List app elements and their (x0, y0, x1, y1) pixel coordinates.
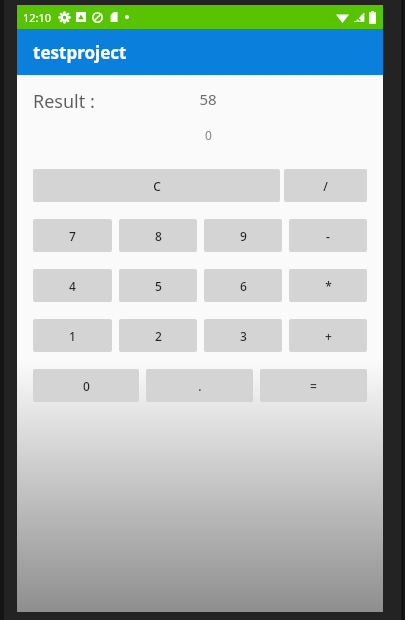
staticText: 0 (205, 127, 212, 143)
staticText: 12:10 (23, 10, 52, 25)
staticText: 0 (83, 378, 90, 394)
staticText: / (323, 178, 328, 194)
staticText: 6 (240, 278, 247, 294)
staticText: 9 (240, 228, 247, 244)
button[interactable]: - (289, 219, 367, 252)
staticText: 4 (69, 278, 76, 294)
staticText: * (325, 278, 332, 294)
button[interactable]: 2 (119, 319, 197, 352)
button[interactable]: 4 (33, 269, 112, 302)
button[interactable]: . (146, 369, 253, 402)
button[interactable]: 0 (33, 369, 139, 402)
staticText: + (325, 328, 332, 344)
button[interactable]: = (260, 369, 367, 402)
staticText: 5 (155, 278, 162, 294)
button[interactable]: 3 (204, 319, 282, 352)
staticText: testproject (33, 41, 127, 64)
button[interactable]: 5 (119, 269, 197, 302)
staticText: . (198, 378, 202, 394)
button[interactable]: + (289, 319, 367, 352)
staticText: - (326, 228, 330, 244)
staticText: Result : (33, 89, 95, 114)
button[interactable]: 9 (204, 219, 282, 252)
staticText: C (153, 178, 161, 194)
staticText: 1 (69, 328, 76, 344)
button[interactable]: 1 (33, 319, 112, 352)
staticText: 3 (240, 328, 247, 344)
button[interactable]: / (284, 169, 367, 202)
staticText: 2 (155, 328, 162, 344)
button[interactable]: 7 (33, 219, 112, 252)
staticText: 7 (69, 228, 76, 244)
staticText: 58 (199, 89, 217, 109)
button[interactable]: 6 (204, 269, 282, 302)
button[interactable]: C (33, 169, 280, 202)
button[interactable]: 8 (119, 219, 197, 252)
button[interactable]: * (289, 269, 367, 302)
staticText: = (310, 378, 317, 394)
staticText: 8 (155, 228, 162, 244)
